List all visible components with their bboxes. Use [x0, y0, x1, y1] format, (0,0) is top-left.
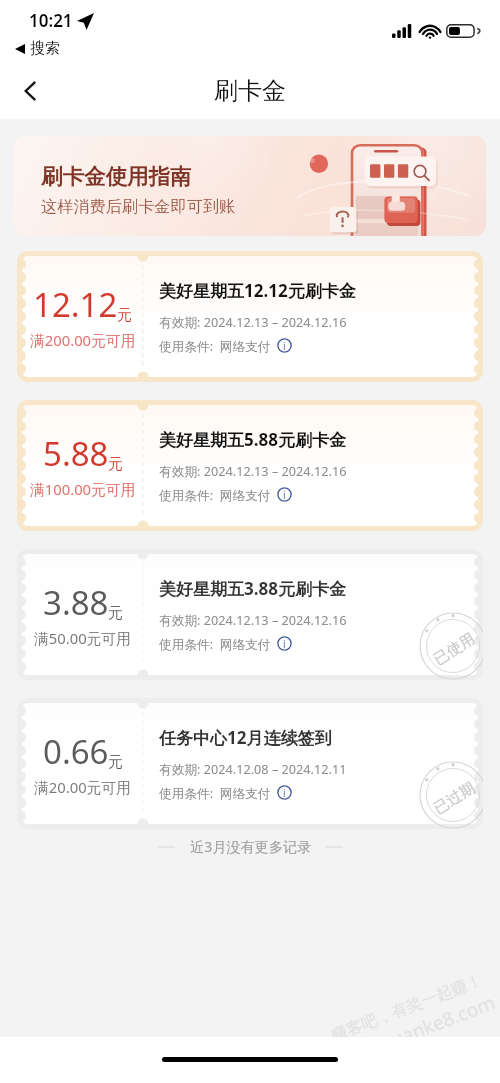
button[interactable]: 0.66 [17, 698, 483, 829]
staticText: 0.66 [43, 729, 109, 774]
button[interactable]: 使用说明 [277, 338, 292, 353]
staticText: 10:21 [29, 9, 73, 32]
staticText: 刷卡金 [214, 76, 286, 106]
staticText: 元 [108, 604, 123, 623]
staticText: 赚客吧，有奖一起赚！ [329, 970, 485, 1046]
staticText: 任务中心12月连续签到 [159, 726, 332, 749]
staticText: i [283, 488, 286, 502]
button[interactable]: 使用说明 [277, 785, 292, 800]
staticText: 3.88 [43, 580, 109, 625]
staticText: 使用条件: 网络支付 [159, 635, 271, 652]
staticText: 有效期: 2024.12.13 – 2024.12.16 [159, 462, 347, 479]
staticText: i [283, 786, 286, 800]
staticText: 搜索 [30, 39, 60, 58]
staticText: 有效期: 2024.12.08 – 2024.12.11 [159, 760, 347, 777]
staticText: 这样消费后刷卡金即可到账 [41, 196, 236, 216]
staticText: 刷卡金使用指南 [41, 163, 192, 190]
staticText: www.zuanke8.com [333, 989, 499, 1073]
button[interactable]: 使用说明 [277, 487, 292, 502]
staticText: 已过期 [430, 778, 479, 818]
staticText: i [283, 637, 286, 651]
button[interactable]: 3.88 [17, 549, 483, 680]
staticText: 元 [117, 306, 132, 325]
button[interactable]: 搜索 [15, 39, 60, 58]
staticText: 使用条件: 网络支付 [159, 486, 271, 503]
button[interactable]: 返回 [8, 68, 54, 114]
button[interactable]: 刷卡金使用指南 [14, 136, 486, 236]
staticText: 美好星期五3.88元刷卡金 [159, 577, 346, 600]
staticText: 元 [108, 753, 123, 772]
staticText: 美好星期五5.88元刷卡金 [159, 428, 346, 451]
staticText: 有效期: 2024.12.13 – 2024.12.16 [159, 611, 347, 628]
staticText: 已使用 [430, 629, 479, 669]
staticText: i [283, 339, 286, 353]
staticText: 满50.00元可用 [34, 628, 132, 648]
staticText: 满20.00元可用 [34, 777, 132, 797]
staticText: 5.88 [43, 431, 109, 476]
button[interactable]: 12.12 [17, 251, 483, 382]
staticText: 满200.00元可用 [30, 330, 136, 350]
staticText: 12.12 [33, 282, 118, 327]
button[interactable]: 5.88 [17, 400, 483, 531]
staticText: 有效期: 2024.12.13 – 2024.12.16 [159, 313, 347, 330]
staticText: 使用条件: 网络支付 [159, 337, 271, 354]
staticText: 近3月没有更多记录 [190, 837, 312, 856]
staticText: 美好星期五12.12元刷卡金 [159, 279, 356, 302]
staticText: 满100.00元可用 [30, 479, 136, 499]
staticText: 元 [108, 455, 123, 474]
button[interactable]: 使用说明 [277, 636, 292, 651]
staticText: 使用条件: 网络支付 [159, 784, 271, 801]
